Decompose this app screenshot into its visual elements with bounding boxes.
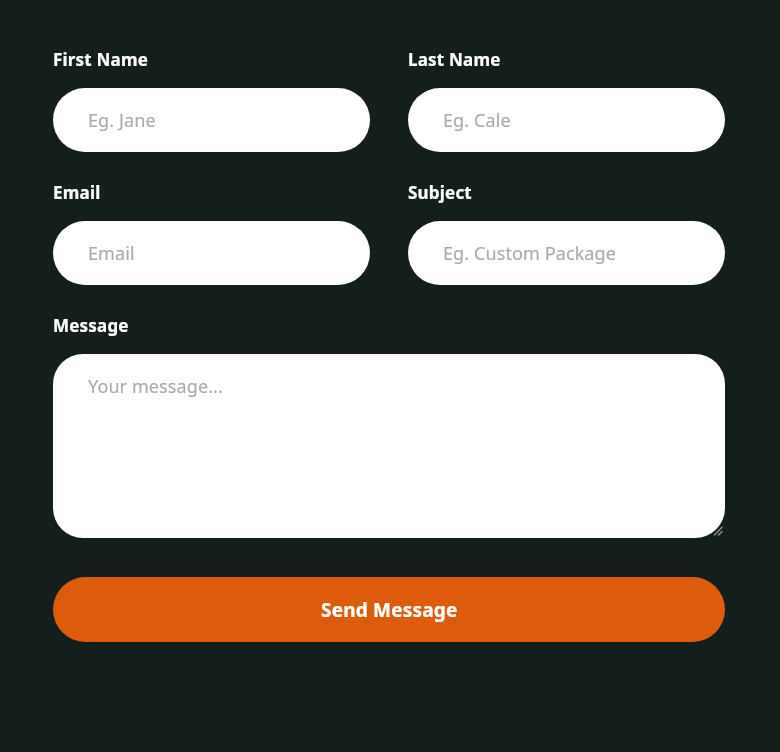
button[interactable]: Your message... — [53, 354, 725, 538]
staticText: Email — [88, 241, 135, 266]
button[interactable]: Send Message — [53, 577, 725, 642]
button[interactable]: Email — [53, 221, 370, 285]
staticText: Last Name — [408, 48, 501, 71]
staticText: Your message... — [88, 374, 223, 399]
staticText: Subject — [408, 181, 472, 204]
staticText: Eg. Custom Package — [443, 241, 616, 266]
staticText: Send Message — [321, 597, 458, 623]
staticText: Eg. Cale — [443, 108, 511, 133]
staticText: Eg. Jane — [88, 108, 156, 133]
staticText: Message — [53, 314, 129, 337]
button[interactable]: Eg. Cale — [408, 88, 725, 152]
button[interactable]: Eg. Jane — [53, 88, 370, 152]
button[interactable]: Eg. Custom Package — [408, 221, 725, 285]
staticText: Email — [53, 181, 101, 204]
staticText: First Name — [53, 48, 149, 71]
